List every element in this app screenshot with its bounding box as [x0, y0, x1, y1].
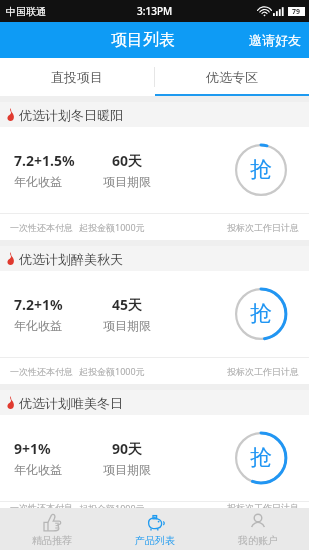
- staticText: 产品列表: [135, 534, 175, 547]
- staticText: 年化收益: [14, 462, 62, 477]
- staticText: 我的账户: [238, 534, 278, 547]
- staticText: 年化收益: [14, 318, 62, 333]
- staticText: 起投金额1000元: [79, 221, 145, 233]
- staticText: 邀请好友: [249, 32, 301, 48]
- button[interactable]: 9+1%: [0, 415, 309, 501]
- staticText: 年化收益: [14, 174, 62, 189]
- button[interactable]: 产品列表: [103, 508, 206, 550]
- staticText: 项目期限: [103, 462, 151, 477]
- staticText: 抢: [250, 300, 272, 328]
- staticText: 优选计划唯美冬日: [19, 395, 123, 411]
- button[interactable]: 直投项目: [0, 58, 154, 96]
- staticText: 项目列表: [111, 30, 175, 50]
- staticText: 7.2+1%: [14, 295, 63, 314]
- staticText: 45天: [112, 295, 143, 314]
- staticText: 精品推荐: [32, 534, 72, 547]
- button[interactable]: 抢购: [235, 144, 287, 196]
- staticText: 9+1%: [14, 439, 51, 458]
- button[interactable]: 优选计划冬日暖阳: [0, 102, 309, 127]
- staticText: 优选计划醉美秋天: [19, 251, 123, 267]
- staticText: 抢: [250, 156, 272, 184]
- button[interactable]: 优选专区: [155, 58, 309, 96]
- button[interactable]: 7.2+1.5%: [0, 127, 309, 213]
- button[interactable]: 邀请好友: [241, 22, 309, 58]
- staticText: 60天: [112, 151, 143, 170]
- button[interactable]: 抢购: [235, 432, 287, 484]
- staticText: 起投金额1000元: [79, 502, 145, 508]
- staticText: 3:13PM: [137, 4, 173, 18]
- staticText: 项目期限: [103, 318, 151, 333]
- staticText: 抢: [250, 444, 272, 472]
- staticText: 90天: [112, 439, 143, 458]
- staticText: 一次性还本付息: [10, 222, 73, 233]
- staticText: 优选计划冬日暖阳: [19, 107, 123, 123]
- button[interactable]: 优选计划醉美秋天: [0, 246, 309, 271]
- staticText: 一次性还本付息: [10, 502, 73, 508]
- staticText: 中国联通: [6, 5, 46, 18]
- staticText: 起投金额1000元: [79, 365, 145, 377]
- staticText: 项目期限: [103, 174, 151, 189]
- button[interactable]: 我的账户: [206, 508, 309, 550]
- button[interactable]: 7.2+1%: [0, 271, 309, 357]
- staticText: 投标次工作日计息: [227, 222, 299, 233]
- staticText: 直投项目: [51, 69, 103, 85]
- staticText: 投标次工作日计息: [227, 366, 299, 377]
- button[interactable]: 精品推荐: [0, 508, 103, 550]
- button[interactable]: 优选计划唯美冬日: [0, 390, 309, 415]
- staticText: 79: [292, 7, 301, 16]
- staticText: 一次性还本付息: [10, 366, 73, 377]
- staticText: 优选专区: [206, 69, 258, 85]
- button[interactable]: 抢购: [235, 288, 287, 340]
- staticText: 投标次工作日计息: [227, 502, 299, 508]
- staticText: 7.2+1.5%: [14, 151, 75, 170]
